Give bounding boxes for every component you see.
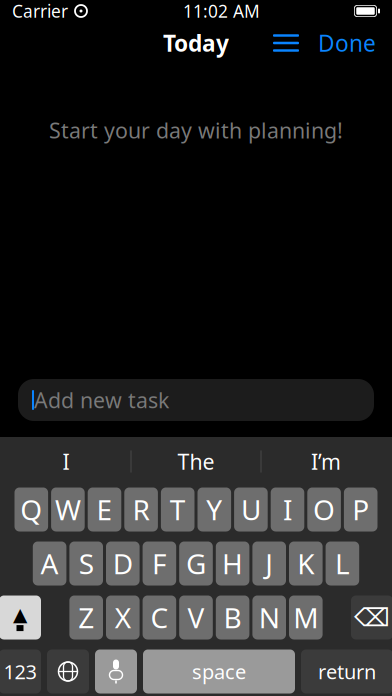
button[interactable]: R: [124, 487, 158, 531]
button[interactable]: G: [179, 541, 213, 585]
button[interactable]: T: [161, 487, 194, 531]
button[interactable]: A: [33, 541, 66, 585]
staticText: I’m: [311, 447, 341, 476]
staticText: W: [55, 491, 81, 528]
staticText: return: [318, 658, 376, 685]
button[interactable]: Next keyboard: [47, 649, 89, 693]
staticText: X: [115, 599, 131, 636]
button[interactable]: Q: [14, 487, 48, 531]
button[interactable]: V: [179, 595, 213, 639]
staticText: Add new task: [34, 386, 169, 414]
button[interactable]: return: [301, 649, 392, 693]
staticText: Q: [20, 491, 42, 528]
staticText: N: [259, 599, 280, 636]
button[interactable]: Y: [197, 487, 231, 531]
button[interactable]: W: [51, 487, 85, 531]
staticText: T: [170, 491, 186, 528]
button[interactable]: M: [289, 595, 323, 639]
staticText: K: [297, 545, 314, 582]
button[interactable]: 123: [0, 649, 41, 693]
staticText: V: [187, 599, 204, 636]
staticText: O: [313, 491, 335, 528]
button[interactable]: O: [307, 487, 341, 531]
staticText: G: [186, 545, 206, 582]
button[interactable]: Z: [69, 595, 103, 639]
staticText: ▲: [13, 604, 27, 625]
button[interactable]: B: [216, 595, 249, 639]
button[interactable]: I’m: [261, 439, 390, 483]
button[interactable]: P: [344, 487, 377, 531]
button[interactable]: space: [143, 649, 295, 693]
staticText: L: [335, 545, 350, 582]
staticText: A: [41, 545, 59, 582]
button[interactable]: U: [234, 487, 268, 531]
staticText: Today: [163, 28, 229, 58]
button[interactable]: D: [106, 541, 140, 585]
staticText: Done: [318, 28, 376, 58]
staticText: Start your day with planning!: [49, 116, 343, 144]
staticText: C: [150, 599, 168, 636]
button[interactable]: Dictate: [95, 649, 137, 693]
staticText: D: [113, 545, 133, 582]
button[interactable]: Shift: [0, 595, 41, 639]
button[interactable]: H: [216, 541, 249, 585]
staticText: S: [79, 545, 94, 582]
staticText: E: [96, 491, 112, 528]
staticText: The: [177, 447, 214, 476]
button[interactable]: L: [326, 541, 359, 585]
button[interactable]: S: [69, 541, 103, 585]
staticText: 11:02 AM: [183, 0, 260, 22]
button[interactable]: The: [131, 439, 260, 483]
button[interactable]: F: [143, 541, 176, 585]
staticText: F: [152, 545, 167, 582]
staticText: Y: [206, 491, 222, 528]
staticText: R: [133, 491, 150, 528]
button[interactable]: Done: [308, 22, 386, 64]
staticText: H: [222, 545, 243, 582]
staticText: M: [293, 599, 318, 636]
button[interactable]: J: [252, 541, 286, 585]
staticText: ⌫: [354, 603, 390, 632]
staticText: B: [224, 599, 242, 636]
staticText: Z: [78, 599, 94, 636]
staticText: Carrier: [12, 0, 68, 22]
staticText: U: [241, 491, 261, 528]
staticText: space: [192, 658, 246, 685]
staticText: I: [62, 447, 69, 476]
staticText: I: [283, 491, 292, 528]
button[interactable]: I: [271, 487, 304, 531]
button[interactable]: K: [289, 541, 323, 585]
button[interactable]: X: [106, 595, 140, 639]
button[interactable]: E: [88, 487, 121, 531]
button[interactable]: I: [1, 439, 130, 483]
button[interactable]: C: [143, 595, 176, 639]
button[interactable]: Menu: [264, 22, 308, 64]
button[interactable]: N: [252, 595, 286, 639]
staticText: J: [265, 545, 273, 582]
staticText: 123: [3, 658, 36, 685]
button[interactable]: Delete: [351, 595, 392, 639]
staticText: P: [352, 491, 369, 528]
